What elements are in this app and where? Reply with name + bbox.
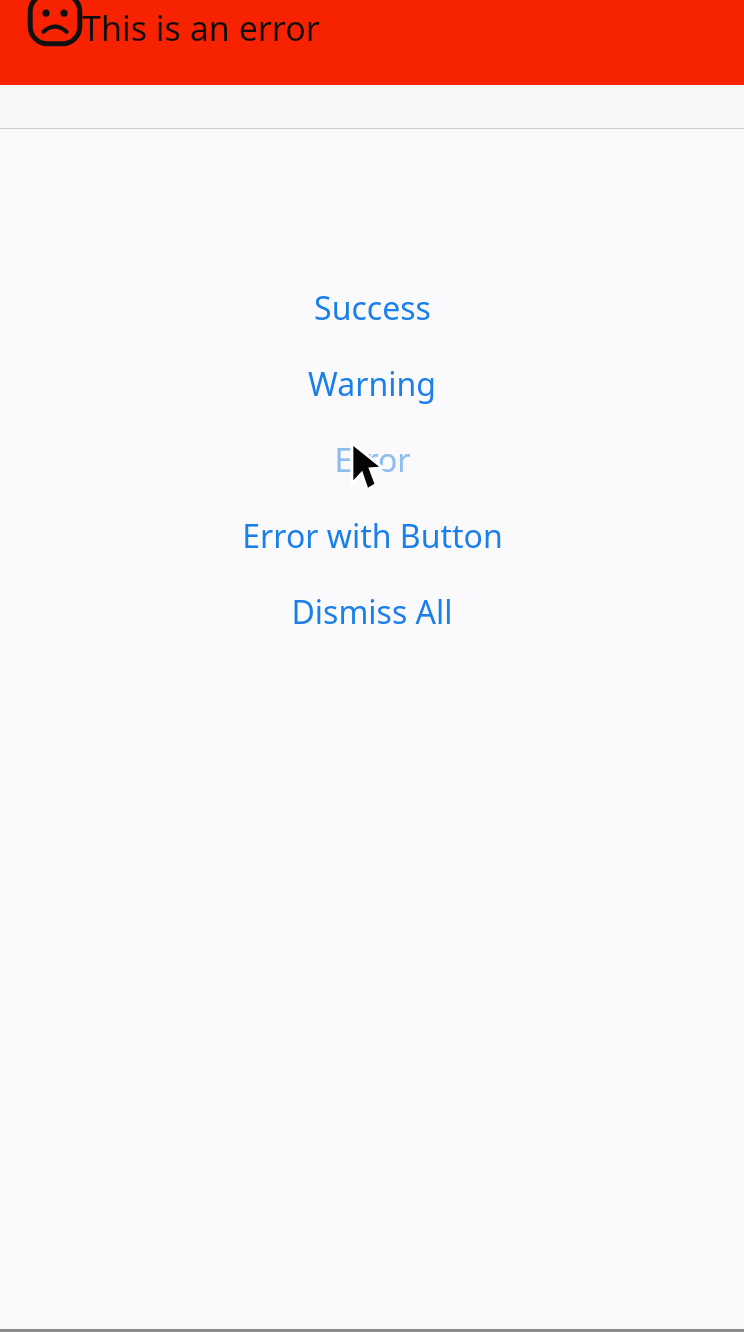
staticText: This is an error [82,5,320,51]
button[interactable]: Success [0,270,744,346]
staticText: Error with Button [242,514,503,558]
button[interactable]: Warning [0,346,744,422]
button[interactable]: Error with Button [0,498,744,574]
staticText: Error [334,438,411,482]
other: Error [26,0,84,48]
staticText: Warning [308,362,436,406]
button[interactable]: Error [0,422,744,498]
staticText: Dismiss All [291,590,453,634]
button[interactable]: Dismiss All [0,574,744,650]
button[interactable]: Error [0,0,744,85]
staticText: Success [314,286,431,330]
